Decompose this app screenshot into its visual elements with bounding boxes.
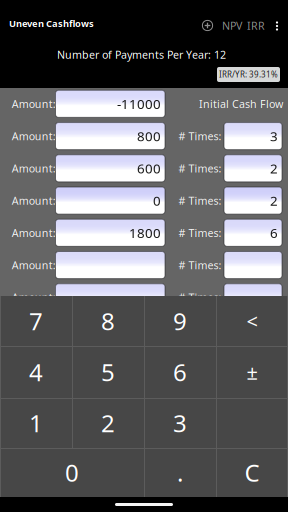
button[interactable]: 600: [55, 155, 165, 182]
button[interactable]: IRR/YR: 39.31%: [217, 67, 280, 82]
button[interactable]: NPV: [220, 14, 244, 36]
staticText: Initial Cash Flow: [199, 97, 283, 111]
staticText: # Times:: [178, 193, 221, 208]
staticText: Amount:: [12, 290, 56, 304]
staticText: 6: [173, 356, 187, 388]
button[interactable]: 3: [224, 122, 282, 150]
button[interactable]: 7: [0, 296, 72, 346]
staticText: Amount:: [12, 129, 56, 143]
button[interactable]: 800: [55, 122, 165, 150]
button[interactable]: 6: [224, 219, 282, 246]
button[interactable]: Change sign: [216, 346, 288, 398]
staticText: 600: [137, 159, 161, 177]
staticText: NPV: [222, 18, 242, 33]
staticText: 7: [29, 305, 43, 337]
staticText: # Times:: [178, 129, 221, 143]
button[interactable]: [224, 284, 282, 311]
staticText: .: [177, 457, 183, 488]
button[interactable]: [55, 284, 165, 311]
staticText: Number of Payments Per Year: 12: [57, 47, 226, 62]
staticText: IRR: [247, 18, 265, 33]
staticText: 800: [137, 127, 161, 145]
staticText: 1800: [129, 224, 161, 242]
button[interactable]: Decimal point: [144, 448, 216, 497]
staticText: C: [244, 457, 259, 488]
staticText: 2: [101, 407, 115, 439]
button[interactable]: [224, 251, 282, 279]
staticText: Amount:: [12, 97, 56, 111]
button[interactable]: 0: [55, 187, 165, 214]
staticText: Uneven Cashflows: [9, 17, 94, 30]
staticText: 0: [65, 457, 79, 488]
staticText: 8: [101, 305, 115, 337]
staticText: IRR/YR: 39.31%: [219, 69, 278, 80]
button[interactable]: 0: [0, 448, 144, 497]
button[interactable]: More options: [267, 14, 287, 38]
button[interactable]: [55, 251, 165, 279]
staticText: # Times:: [178, 161, 221, 175]
staticText: # Times:: [178, 258, 221, 272]
staticText: 5: [101, 356, 115, 388]
button[interactable]: 1800: [55, 219, 165, 246]
staticText: 2: [270, 192, 278, 209]
button[interactable]: Clear: [216, 448, 288, 497]
staticText: # Times:: [178, 226, 221, 240]
staticText: # Times:: [178, 290, 221, 304]
button[interactable]: 3: [144, 398, 216, 448]
button[interactable]: 2: [224, 155, 282, 182]
staticText: Amount:: [12, 161, 56, 175]
staticText: 6: [270, 224, 278, 242]
staticText: Amount:: [12, 193, 56, 208]
staticText: 9: [173, 305, 187, 337]
button[interactable]: IRR: [245, 14, 267, 36]
button[interactable]: Backspace: [216, 296, 288, 346]
button[interactable]: 5: [72, 346, 144, 398]
staticText: 2: [270, 159, 278, 177]
staticText: Amount:: [12, 226, 56, 240]
button[interactable]: 2: [224, 187, 282, 214]
button[interactable]: 1: [0, 398, 72, 448]
staticText: 1: [29, 407, 43, 439]
staticText: ±: [246, 359, 257, 385]
staticText: 3: [173, 407, 187, 439]
button[interactable]: 9: [144, 296, 216, 346]
button[interactable]: 2: [72, 398, 144, 448]
button[interactable]: 8: [72, 296, 144, 346]
staticText: -11000: [117, 95, 161, 113]
button[interactable]: Add cash flow: [195, 13, 219, 37]
staticText: <: [246, 308, 257, 334]
staticText: 0: [153, 192, 161, 209]
button[interactable]: 6: [144, 346, 216, 398]
staticText: 3: [270, 127, 278, 145]
staticText: 4: [29, 356, 43, 388]
staticText: Amount:: [12, 258, 56, 272]
button[interactable]: -11000: [55, 90, 165, 117]
button[interactable]: 4: [0, 346, 72, 398]
